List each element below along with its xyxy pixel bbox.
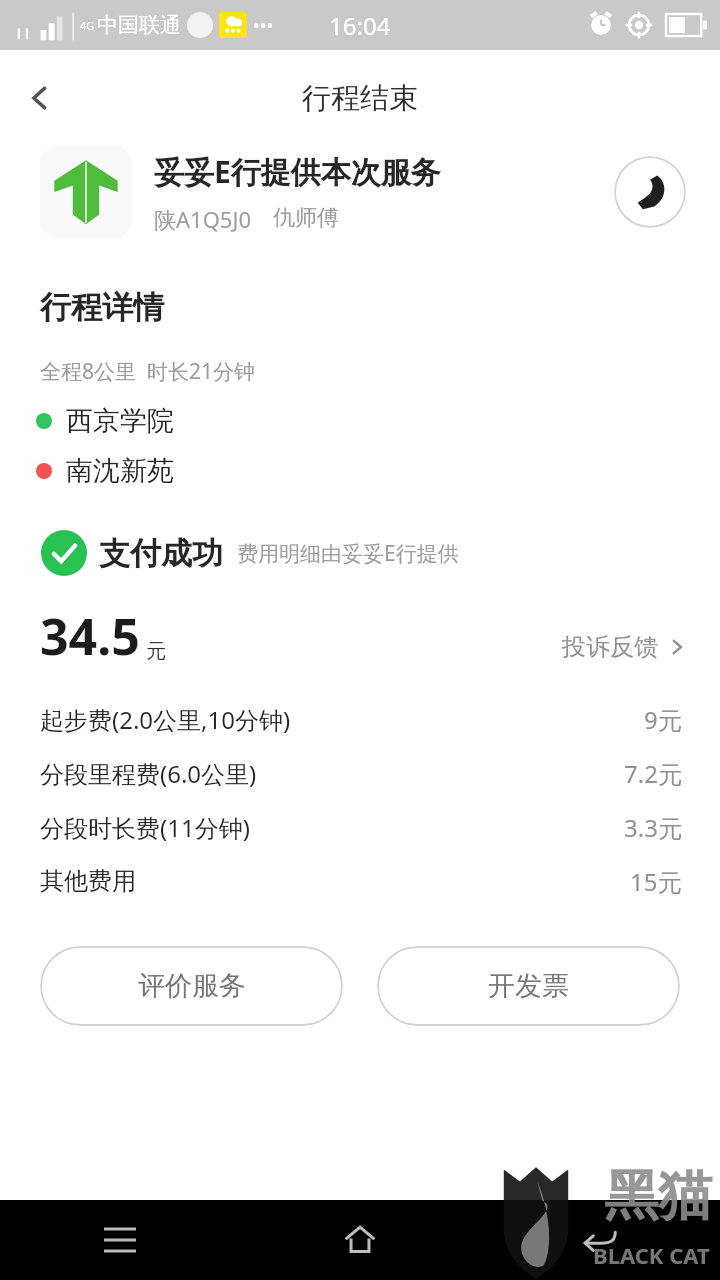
staticText: BLACK CAT — [593, 1240, 710, 1270]
staticText: 支付成功 — [99, 534, 223, 573]
staticText: 陕A1Q5J0 — [154, 204, 251, 234]
staticText: 费用明细由妥妥E行提供 — [237, 539, 459, 568]
button[interactable]: 投诉反馈 — [562, 632, 686, 662]
staticText: 黑猫 — [604, 1162, 712, 1230]
staticText: 元 — [146, 639, 166, 664]
staticText: 南沈新苑 — [66, 454, 174, 488]
staticText: 全程8公里 时长21分钟 — [40, 357, 255, 386]
staticText: 妥妥E行提供本次服务 — [154, 151, 441, 192]
staticText: 行程结束 — [302, 80, 418, 117]
staticText: 3.3元 — [624, 811, 682, 844]
staticText: 评价服务 — [138, 969, 246, 1003]
button[interactable]: 开发票 — [377, 946, 680, 1026]
button[interactable]: Back — [16, 74, 64, 122]
staticText: 行程详情 — [40, 288, 164, 327]
staticText: 西京学院 — [66, 404, 174, 438]
staticText: 34.5 — [40, 602, 140, 670]
staticText: 分段时长费(11分钟) — [40, 811, 250, 844]
staticText: 其他费用 — [40, 866, 136, 896]
staticText: 开发票 — [488, 969, 569, 1003]
button[interactable]: Back — [480, 1200, 720, 1280]
button[interactable]: Call driver — [614, 156, 686, 228]
button[interactable]: Home — [240, 1200, 480, 1280]
button[interactable]: 评价服务 — [40, 946, 343, 1026]
staticText: 起步费(2.0公里,10分钟) — [40, 703, 291, 736]
staticText: 投诉反馈 — [562, 632, 658, 662]
staticText: 15元 — [630, 865, 682, 898]
staticText: 分段里程费(6.0公里) — [40, 757, 257, 790]
staticText: 仇师傅 — [273, 204, 339, 232]
staticText: 中国联通 — [97, 12, 181, 38]
staticText: 4G — [80, 18, 95, 33]
staticText: 7.2元 — [624, 757, 682, 790]
staticText: 16:04 — [329, 9, 391, 42]
staticText: 9元 — [644, 703, 682, 736]
button[interactable]: Recent apps — [0, 1200, 240, 1280]
staticText: ••• — [253, 13, 274, 38]
